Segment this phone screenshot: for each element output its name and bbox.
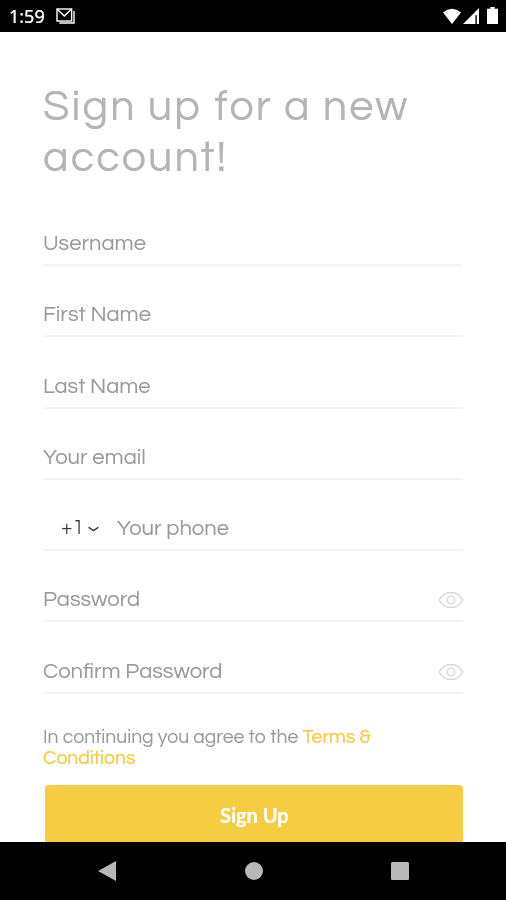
staticText: Sign Up — [220, 803, 289, 827]
staticText: Username — [43, 232, 146, 255]
staticText: In continuing you agree to the Terms & C… — [43, 727, 388, 768]
staticText: Last Name — [43, 375, 151, 398]
button[interactable]: Confirm Password — [0, 621, 506, 692]
staticText: Sign up for a new account! — [43, 85, 410, 180]
button[interactable]: Sign Up — [45, 785, 463, 845]
button[interactable]: Recent apps — [375, 842, 424, 900]
staticText: 1:59 — [9, 4, 45, 29]
staticText: Your phone — [117, 517, 229, 540]
button[interactable]: In continuing you agree to the Terms & C… — [43, 727, 388, 768]
staticText: Confirm Password — [43, 660, 223, 683]
button[interactable]: Password — [0, 549, 506, 620]
staticText: First Name — [43, 303, 151, 326]
staticText: Password — [43, 588, 141, 611]
button[interactable]: Your email — [0, 407, 506, 478]
staticText: Your email — [43, 446, 146, 469]
button[interactable]: First Name — [0, 264, 506, 335]
button[interactable]: Home — [229, 842, 278, 900]
button[interactable]: Username — [0, 193, 506, 264]
button[interactable]: Show password — [437, 586, 465, 614]
button[interactable]: +1 — [61, 517, 102, 539]
staticText: +1 — [61, 517, 85, 539]
button[interactable]: Show password — [437, 658, 465, 686]
button[interactable]: Back — [82, 842, 131, 900]
button[interactable]: Last Name — [0, 336, 506, 407]
